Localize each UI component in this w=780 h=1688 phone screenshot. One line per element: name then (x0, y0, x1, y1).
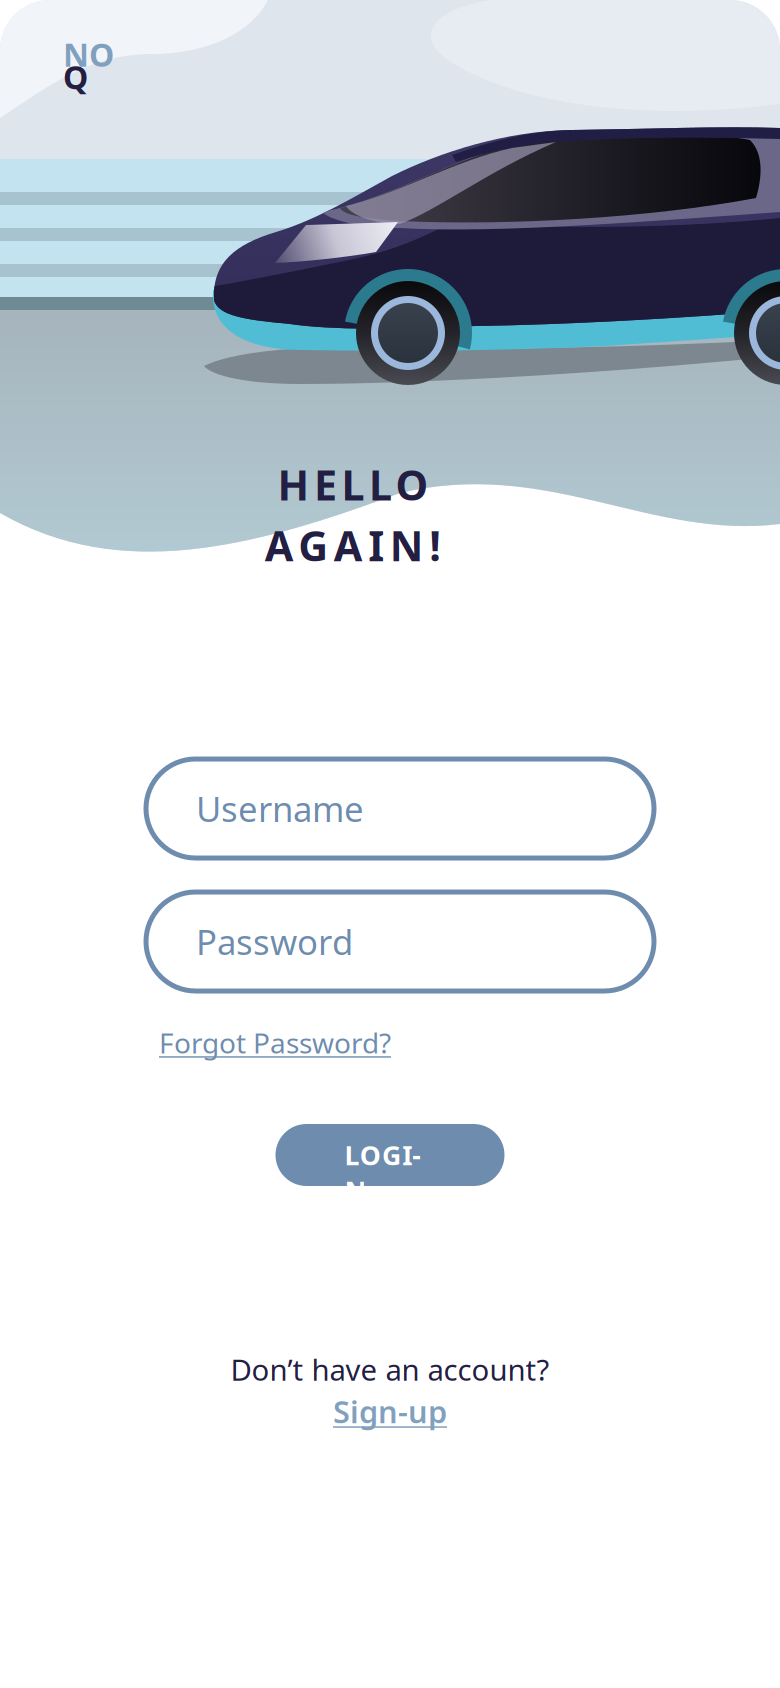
button[interactable]: LOGIN (275, 1124, 504, 1186)
staticText: HELLO (277, 457, 428, 512)
staticText: Username (196, 785, 364, 831)
button[interactable]: Sign-up (333, 1391, 447, 1432)
staticText: NO (63, 33, 114, 75)
staticText: Password (196, 918, 353, 964)
staticText: AGAIN! (265, 518, 441, 573)
staticText: LOGIN (345, 1137, 435, 1173)
staticText: Q (63, 55, 88, 98)
button[interactable]: Forgot Password? (159, 1021, 391, 1064)
staticText: Forgot Password? (159, 1024, 391, 1061)
staticText: Don’t have an account? (230, 1350, 549, 1389)
staticText: Sign-up (333, 1391, 447, 1432)
